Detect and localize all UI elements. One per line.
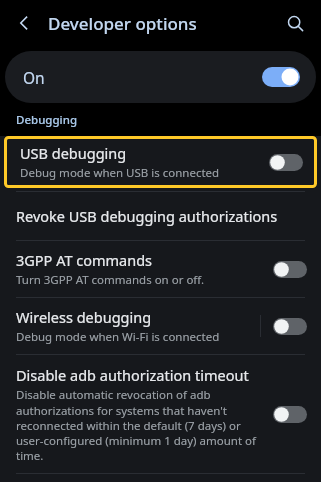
- staticText: Debugging: [16, 112, 78, 128]
- staticText: Turn 3GPP AT commands on or off.: [16, 272, 205, 288]
- button[interactable]: On: [5, 51, 316, 103]
- staticText: Disable adb authorization timeout: [16, 365, 249, 385]
- button[interactable]: Back: [6, 5, 42, 41]
- staticText: On: [23, 67, 262, 88]
- button[interactable]: 3GPP AT commands: [0, 241, 321, 297]
- staticText: 3GPP AT commands: [16, 250, 153, 270]
- staticText: Debug mode when USB is connected: [20, 165, 220, 181]
- button[interactable]: USB debugging: [4, 136, 317, 188]
- staticText: Developer options: [48, 12, 277, 35]
- staticText: Revoke USB debugging authorizations: [16, 206, 278, 226]
- staticText: Disable automatic revocation of adb auth…: [16, 387, 263, 463]
- button[interactable]: Disable adb authorization timeout: [0, 355, 321, 473]
- staticText: Debug mode when Wi-Fi is connected: [16, 329, 220, 345]
- button[interactable]: Wireless debugging: [0, 298, 321, 354]
- staticText: USB debugging: [20, 143, 127, 163]
- button[interactable]: Search: [277, 5, 313, 41]
- staticText: Wireless debugging: [16, 307, 152, 327]
- button[interactable]: Revoke USB debugging authorizations: [0, 192, 321, 240]
